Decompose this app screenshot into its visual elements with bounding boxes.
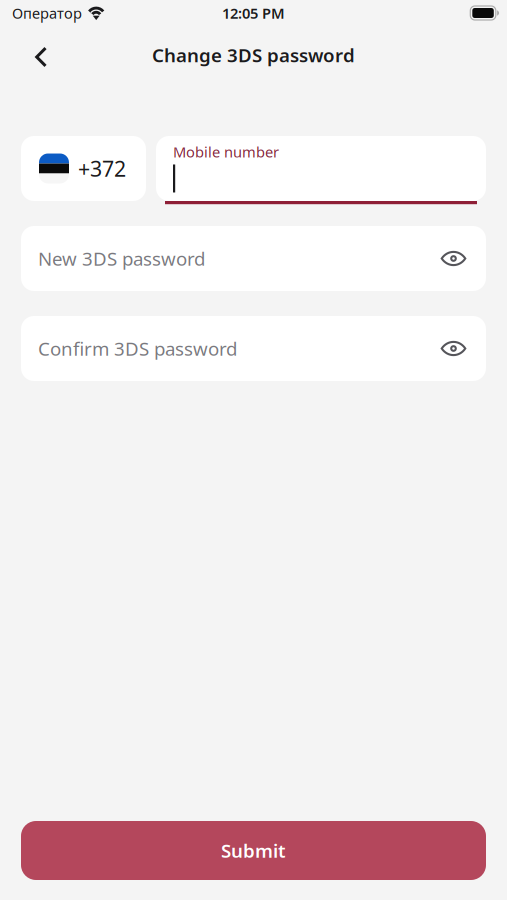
staticText: New 3DS password	[38, 246, 205, 271]
staticText: 12:05 PM	[222, 3, 285, 23]
staticText: +372	[78, 154, 126, 183]
staticText: Submit	[221, 838, 286, 863]
staticText: Mobile number	[173, 142, 279, 161]
staticText: Оператор	[12, 3, 82, 23]
button[interactable]: New 3DS password	[21, 226, 431, 291]
button[interactable]: Country code +372	[21, 136, 146, 201]
staticText: Confirm 3DS password	[38, 336, 237, 361]
button[interactable]: Submit	[21, 821, 486, 880]
button[interactable]: Back	[19, 33, 63, 77]
button[interactable]: Show Confirm 3DS password	[431, 316, 476, 381]
button[interactable]: Show New 3DS password	[431, 226, 476, 291]
button[interactable]: Confirm 3DS password	[21, 316, 431, 381]
staticText: Change 3DS password	[152, 43, 355, 67]
